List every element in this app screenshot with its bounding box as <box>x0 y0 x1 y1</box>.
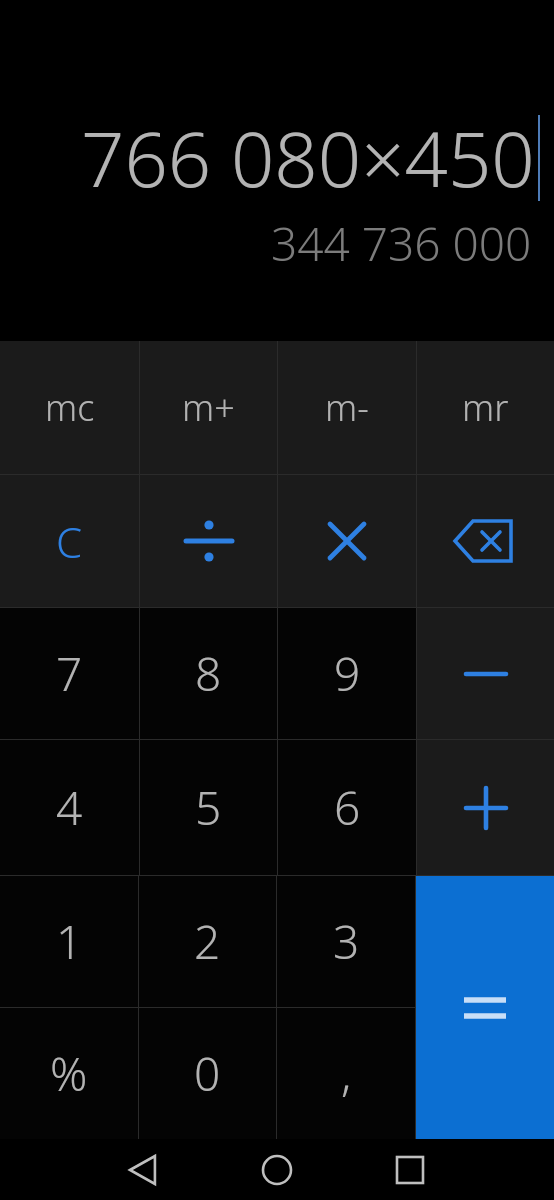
button[interactable]: 2 <box>139 876 276 1007</box>
button[interactable]: % <box>0 1008 138 1139</box>
staticText: 9 <box>334 642 361 705</box>
button[interactable]: C <box>0 475 139 607</box>
button[interactable]: 3 <box>277 876 415 1007</box>
staticText: C <box>56 513 83 570</box>
staticText: 0 <box>194 1042 221 1105</box>
button[interactable]: mr <box>417 341 554 474</box>
staticText: 5 <box>195 776 222 839</box>
staticText: mr <box>462 383 509 432</box>
button[interactable]: Plus <box>417 740 554 875</box>
button[interactable]: 7 <box>0 608 139 739</box>
button[interactable]: 9 <box>278 608 416 739</box>
staticText: % <box>50 1042 88 1105</box>
button[interactable]: m- <box>278 341 416 474</box>
button[interactable]: 6 <box>278 740 416 875</box>
button[interactable]: Backspace <box>417 475 554 607</box>
button[interactable]: Equals <box>416 876 554 1139</box>
button[interactable]: , <box>277 1008 415 1139</box>
staticText: 4 <box>56 776 83 839</box>
button[interactable]: Minus <box>417 608 554 739</box>
button[interactable]: Home <box>249 1142 305 1198</box>
button[interactable]: Multiply <box>278 475 416 607</box>
button[interactable]: mc <box>0 341 139 474</box>
staticText: 2 <box>194 910 221 973</box>
button[interactable]: 4 <box>0 740 139 875</box>
button[interactable]: m+ <box>140 341 277 474</box>
staticText: 3 <box>333 910 360 973</box>
staticText: 766 080×450 <box>81 106 535 210</box>
button[interactable]: 5 <box>140 740 277 875</box>
button[interactable]: Back <box>116 1142 172 1198</box>
staticText: 1 <box>56 910 83 973</box>
staticText: 8 <box>195 642 222 705</box>
staticText: m+ <box>182 383 235 432</box>
staticText: m- <box>325 383 369 432</box>
button[interactable]: Divide <box>140 475 277 607</box>
button[interactable]: Recents <box>382 1142 438 1198</box>
button[interactable]: 1 <box>0 876 138 1007</box>
staticText: , <box>341 1042 352 1105</box>
button[interactable]: 8 <box>140 608 277 739</box>
staticText: 7 <box>56 642 83 705</box>
staticText: 6 <box>334 776 361 839</box>
button[interactable]: 0 <box>139 1008 276 1139</box>
staticText: mc <box>45 383 95 432</box>
staticText: 344 736 000 <box>271 212 532 275</box>
